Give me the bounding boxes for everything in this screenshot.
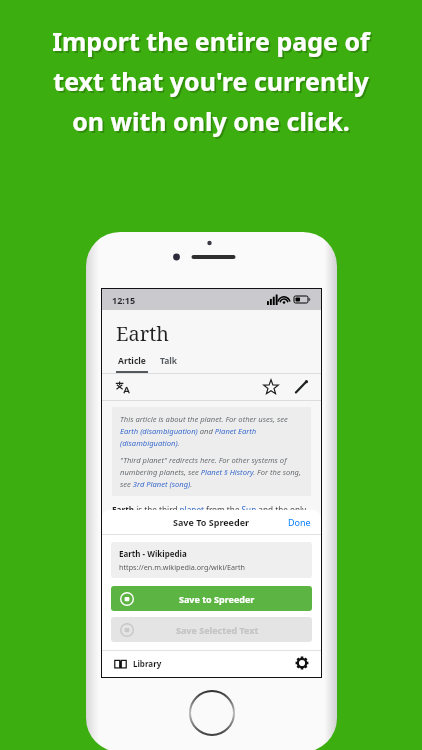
staticText: 12:15 — [112, 294, 136, 306]
staticText: Save Selected Text — [176, 624, 259, 636]
staticText: Earth — [116, 320, 169, 347]
button[interactable]: Done — [278, 516, 321, 528]
staticText: Earth is the third planet from the Sun a… — [112, 504, 311, 539]
staticText: https://en.m.wikipedia.org/wiki/Earth — [119, 562, 245, 572]
staticText: text that you're currently — [53, 64, 369, 98]
button[interactable]: Language — [114, 378, 132, 396]
button[interactable]: Settings — [295, 656, 309, 670]
staticText: Library — [133, 658, 162, 669]
staticText: on with only one click. — [74, 106, 352, 140]
staticText: on with only one click. — [72, 104, 350, 138]
button[interactable]: Save to Spreeder — [111, 586, 312, 611]
staticText: Save to Spreeder — [179, 593, 255, 605]
button[interactable]: Save Selected Text — [111, 617, 312, 642]
staticText: Import the entire page of — [52, 24, 370, 58]
staticText: Earth - Wikipedia — [119, 548, 187, 559]
button[interactable]: Library — [114, 657, 162, 670]
staticText: Save To Spreeder — [173, 516, 250, 528]
staticText: "Third planet" redirects here. For other… — [120, 455, 303, 489]
button[interactable]: Earth - Wikipedia — [111, 542, 312, 578]
staticText: Import the entire page of — [54, 26, 372, 60]
staticText: text that you're currently — [55, 66, 371, 100]
button[interactable]: Watch — [263, 379, 279, 395]
staticText: Article — [118, 355, 146, 367]
staticText: This article is about the planet. For ot… — [120, 414, 303, 448]
button[interactable]: Edit — [293, 379, 309, 395]
button[interactable]: Talk — [160, 355, 178, 371]
button[interactable]: Article — [116, 355, 148, 373]
